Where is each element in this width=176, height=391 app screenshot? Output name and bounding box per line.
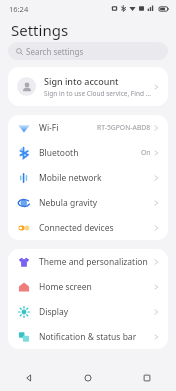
staticText: Bluetooth	[39, 147, 79, 159]
staticText: Display	[39, 306, 68, 318]
staticText: Mobile network	[39, 172, 102, 184]
button[interactable]: Display	[8, 299, 168, 324]
staticText: Nebula gravity	[39, 197, 98, 209]
staticText: Sign in to use Cloud service, Find your …	[44, 89, 151, 98]
staticText: Wi-Fi	[39, 122, 59, 134]
staticText: Connected devices	[39, 222, 114, 234]
button[interactable]: Back	[0, 365, 58, 391]
button[interactable]: Theme and personalization	[8, 249, 168, 274]
button[interactable]: Search settings	[8, 42, 168, 60]
staticText: Sign into account	[44, 75, 119, 87]
button[interactable]: Mobile network	[8, 165, 168, 190]
button[interactable]: Connected devices	[8, 215, 168, 240]
staticText: On	[141, 148, 151, 157]
button[interactable]: Recents	[117, 365, 176, 391]
button[interactable]: Sign into account	[8, 67, 168, 106]
staticText: Search settings	[26, 46, 84, 57]
staticText: Settings	[11, 20, 69, 40]
button[interactable]: Nebula gravity	[8, 190, 168, 215]
button[interactable]: Wi-Fi	[8, 115, 168, 140]
staticText: 16:24	[9, 4, 29, 14]
button[interactable]: Home	[58, 365, 117, 391]
staticText: Home screen	[39, 281, 92, 293]
button[interactable]: Bluetooth	[8, 140, 168, 165]
staticText: RT-5GPON-ABD8	[97, 123, 151, 132]
button[interactable]: Home screen	[8, 274, 168, 299]
staticText: Notification & status bar	[39, 331, 137, 343]
staticText: Theme and personalization	[39, 256, 148, 268]
button[interactable]: Notification & status bar	[8, 324, 168, 349]
